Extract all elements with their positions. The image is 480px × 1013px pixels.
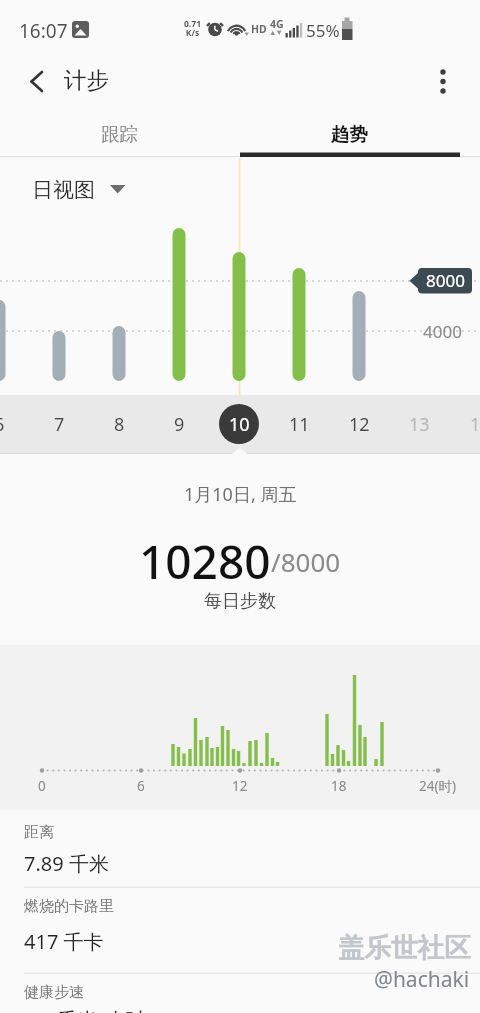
button[interactable] bbox=[0, 887, 480, 973]
staticText: 12 bbox=[232, 777, 248, 795]
staticText: 计步 bbox=[64, 66, 109, 94]
button[interactable]: 13 bbox=[399, 412, 439, 436]
button[interactable]: 10 bbox=[219, 412, 259, 436]
staticText: 7.89 千米 bbox=[24, 850, 109, 877]
staticText: 24(时) bbox=[419, 777, 457, 795]
staticText: HD bbox=[251, 22, 267, 36]
staticText: 健康步速 bbox=[24, 983, 84, 1002]
staticText: 13 bbox=[409, 412, 430, 436]
button[interactable]: 7 bbox=[39, 412, 79, 436]
button[interactable]: 计步 bbox=[64, 66, 109, 94]
button[interactable]: 6 bbox=[0, 412, 19, 436]
staticText: 8000 bbox=[426, 269, 465, 292]
staticText: 7 bbox=[54, 412, 65, 436]
button[interactable]: 8 bbox=[99, 412, 139, 436]
staticText: 7.2 千米/小时 bbox=[24, 1006, 145, 1013]
staticText: 4G bbox=[270, 17, 284, 31]
staticText: 0 bbox=[38, 777, 46, 795]
button[interactable]: 12 bbox=[339, 412, 379, 436]
staticText: 14 bbox=[470, 412, 480, 436]
staticText: 盖乐世社区 bbox=[338, 931, 471, 964]
button[interactable] bbox=[0, 973, 480, 1013]
staticText: 10280 bbox=[139, 530, 271, 580]
staticText: 6 bbox=[0, 412, 5, 436]
staticText: 55% bbox=[306, 19, 340, 42]
button[interactable]: 11 bbox=[279, 412, 319, 436]
staticText: 16:07 bbox=[19, 18, 68, 44]
button[interactable]: 14 bbox=[460, 412, 480, 436]
button[interactable]: 9 bbox=[159, 412, 199, 436]
staticText: /8000 bbox=[271, 544, 341, 579]
staticText: 18 bbox=[331, 777, 347, 795]
button[interactable] bbox=[0, 810, 480, 887]
staticText: 1月10日, 周五 bbox=[184, 482, 297, 506]
button[interactable] bbox=[425, 62, 461, 100]
staticText: 11 bbox=[289, 412, 310, 436]
button[interactable]: 跟踪 bbox=[19, 119, 219, 150]
staticText: 距离 bbox=[24, 823, 54, 842]
staticText: 跟踪 bbox=[101, 123, 138, 146]
staticText: 0.71 K/s bbox=[184, 18, 201, 39]
staticText: 8 bbox=[114, 412, 125, 436]
staticText: 趋势 bbox=[331, 123, 368, 146]
staticText: 417 千卡 bbox=[24, 928, 104, 955]
staticText: @hachaki bbox=[374, 965, 470, 993]
staticText: 12 bbox=[349, 412, 370, 436]
staticText: 4000 bbox=[423, 320, 462, 342]
staticText: 6 bbox=[137, 777, 145, 795]
staticText: 燃烧的卡路里 bbox=[24, 897, 114, 916]
button[interactable]: 趋势 bbox=[249, 119, 449, 150]
staticText: 每日步数 bbox=[204, 590, 276, 613]
staticText: 9 bbox=[174, 412, 185, 436]
button[interactable]: 日视图 bbox=[32, 177, 95, 203]
staticText: 日视图 bbox=[32, 177, 95, 203]
staticText: 10 bbox=[229, 412, 250, 436]
button[interactable] bbox=[20, 62, 56, 100]
